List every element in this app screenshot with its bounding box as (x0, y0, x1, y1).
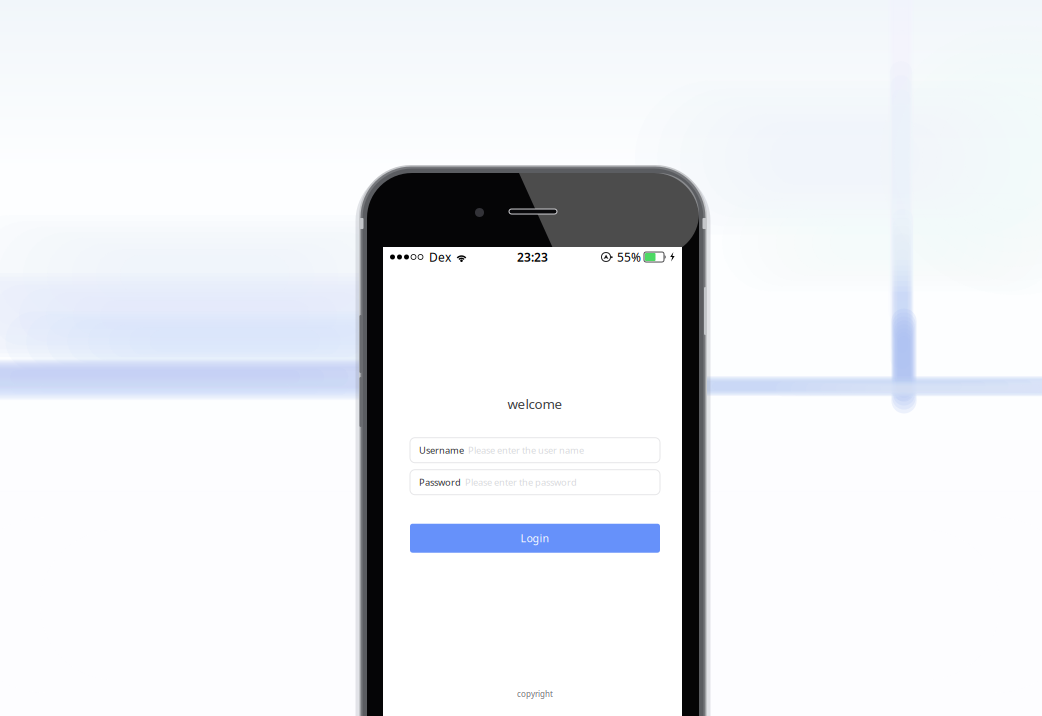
staticText: Dex (429, 249, 451, 265)
staticText: 23:23 (517, 249, 548, 265)
staticText: copyright (517, 689, 553, 699)
staticText: Username (419, 444, 464, 456)
staticText: 55% (617, 249, 641, 265)
button[interactable]: Username (410, 438, 660, 463)
staticText: Please enter the password (465, 476, 577, 488)
staticText: Login (520, 531, 549, 545)
staticText: welcome (507, 395, 562, 413)
button[interactable]: Password (410, 470, 660, 495)
button[interactable]: Login (410, 524, 660, 553)
staticText: Please enter the user name (468, 444, 584, 456)
staticText: Password (419, 476, 461, 488)
